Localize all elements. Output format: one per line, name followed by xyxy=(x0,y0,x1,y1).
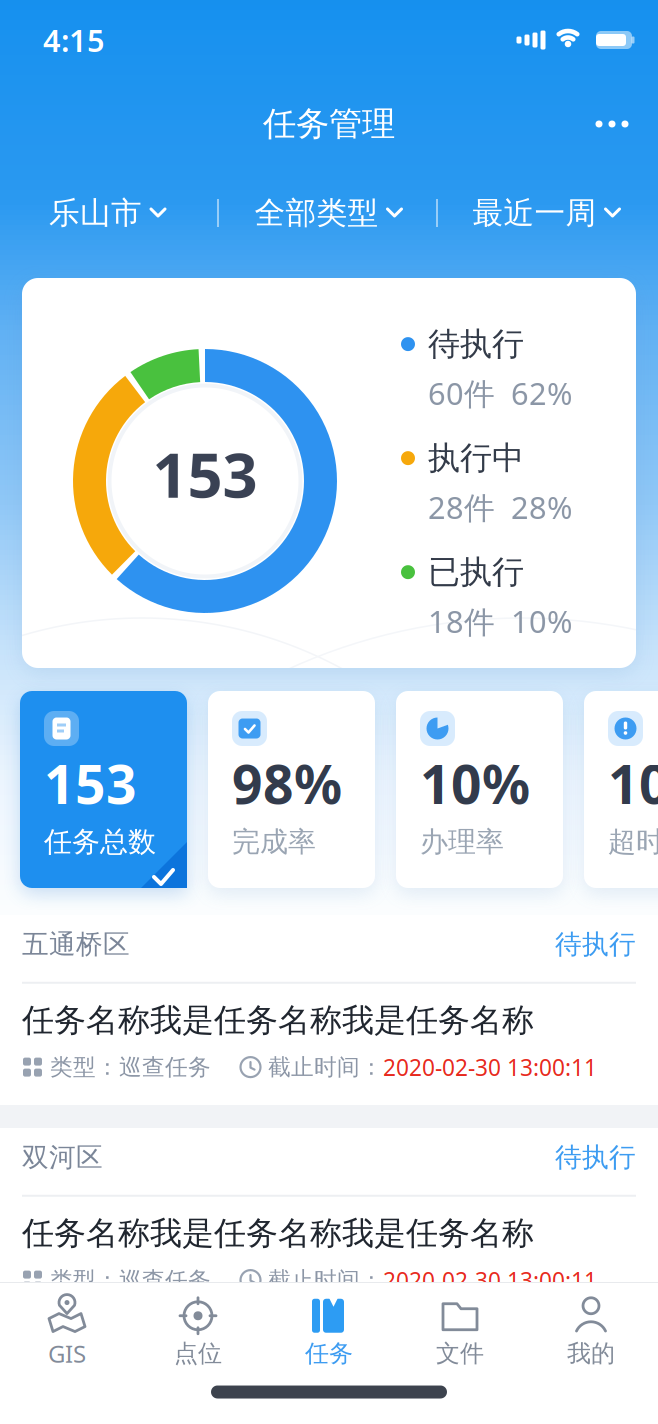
button[interactable]: 我的 xyxy=(525,1286,656,1376)
staticText: 截止时间： xyxy=(268,1266,383,1294)
button[interactable]: 点位 xyxy=(132,1286,263,1376)
button[interactable]: 任务 xyxy=(263,1286,394,1376)
staticText: 10% xyxy=(608,748,658,819)
staticText: 18件 10% xyxy=(428,601,572,641)
staticText: 乐山市 xyxy=(49,194,142,232)
staticText: 4:15 xyxy=(43,20,105,60)
button[interactable]: 最近一周 xyxy=(446,185,646,241)
button[interactable]: 全部类型 xyxy=(228,185,428,241)
staticText: 办理率 xyxy=(420,825,504,859)
staticText: 类型：巡查任务 xyxy=(50,1053,211,1081)
staticText: 待执行 xyxy=(555,1141,636,1174)
staticText: GIS xyxy=(48,1338,86,1369)
staticText: 任务名称我是任务名称我是任务名称 xyxy=(22,1001,534,1040)
staticText: 2020-02-30 13:00:11 xyxy=(383,1265,597,1295)
staticText: 截止时间： xyxy=(268,1053,383,1081)
staticText: 类型：巡查任务 xyxy=(50,1266,211,1294)
staticText: 98% xyxy=(232,748,342,819)
button[interactable]: 10% xyxy=(584,691,658,888)
staticText: 待执行 xyxy=(428,324,524,364)
staticText: 任务 xyxy=(305,1339,353,1368)
staticText: 最近一周 xyxy=(472,194,596,232)
staticText: 执行中 xyxy=(428,438,524,478)
button[interactable]: 153 xyxy=(20,691,187,888)
staticText: 待执行 xyxy=(555,928,636,961)
button[interactable]: 双河区 xyxy=(0,1128,658,1318)
staticText: 任务管理 xyxy=(263,103,395,144)
staticText: 60件 62% xyxy=(428,373,572,413)
staticText: 153 xyxy=(152,433,257,515)
button[interactable]: 五通桥区 xyxy=(0,915,658,1105)
staticText: 全部类型 xyxy=(254,194,378,232)
staticText: 点位 xyxy=(174,1339,222,1368)
staticText: 五通桥区 xyxy=(22,928,130,961)
button[interactable]: 乐山市 xyxy=(17,185,197,241)
staticText: 我的 xyxy=(567,1339,615,1368)
staticText: 2020-02-30 13:00:11 xyxy=(383,1052,597,1082)
button[interactable]: More xyxy=(587,104,637,144)
staticText: 文件 xyxy=(436,1339,484,1368)
staticText: 已执行 xyxy=(428,552,524,592)
button[interactable]: GIS xyxy=(1,1286,132,1376)
staticText: 10% xyxy=(420,748,530,819)
staticText: 双河区 xyxy=(22,1141,103,1174)
staticText: 28件 28% xyxy=(428,487,572,527)
button[interactable]: 10% xyxy=(396,691,563,888)
staticText: 超时率 xyxy=(608,825,658,859)
button[interactable]: 文件 xyxy=(394,1286,525,1376)
staticText: 任务总数 xyxy=(44,825,156,859)
staticText: 任务名称我是任务名称我是任务名称 xyxy=(22,1214,534,1253)
staticText: 完成率 xyxy=(232,825,316,859)
button[interactable]: 98% xyxy=(208,691,375,888)
staticText: 153 xyxy=(44,748,137,819)
